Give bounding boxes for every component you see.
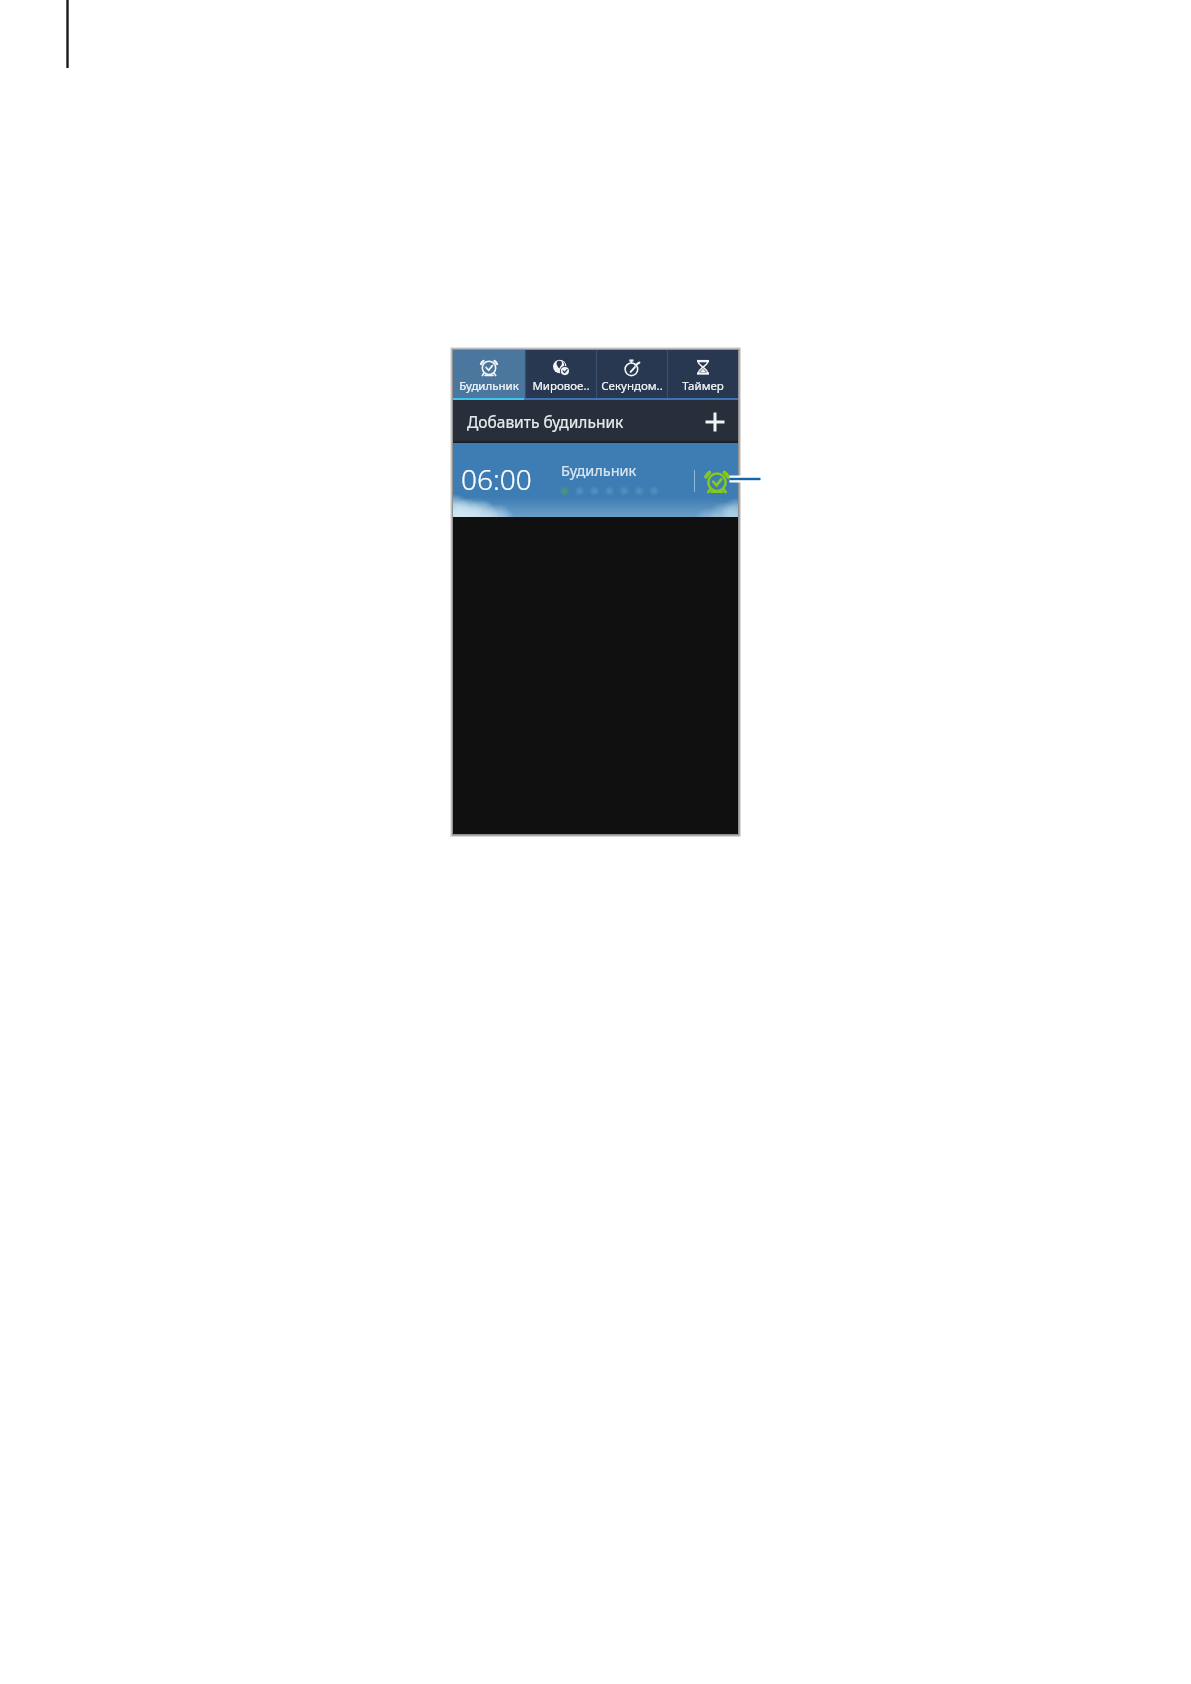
button[interactable]: Таймер: [667, 350, 738, 398]
staticText: Таймер: [682, 378, 724, 394]
staticText: Секундом..: [601, 378, 663, 394]
staticText: Будильник: [459, 378, 519, 394]
button[interactable]: 06:00: [453, 443, 738, 517]
staticText: 06:00: [461, 460, 532, 498]
staticText: Будильник: [561, 460, 637, 480]
button[interactable]: Секундом..: [596, 350, 667, 398]
button[interactable]: Добавить будильник: [453, 400, 738, 443]
button[interactable]: Мировое..: [525, 350, 596, 398]
other: Add alarm: [705, 412, 725, 432]
staticText: Добавить будильник: [467, 411, 624, 432]
staticText: Мировое..: [532, 378, 590, 394]
button[interactable]: Будильник: [453, 350, 525, 398]
button[interactable]: Alarm enabled: [704, 468, 730, 494]
